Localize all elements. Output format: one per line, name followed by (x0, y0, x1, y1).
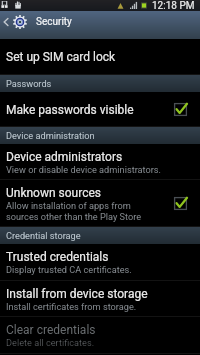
button[interactable]: Navigate up (0, 11, 28, 33)
staticText: Unknown sources (6, 186, 102, 200)
staticText: Clear credentials (6, 323, 96, 337)
button[interactable]: Clear credentials (0, 317, 200, 354)
staticText: Set up SIM card lock (6, 50, 116, 64)
button[interactable]: Device administrators (0, 144, 200, 180)
staticText: Display trusted CA certificates. (6, 264, 132, 275)
staticText: Passwords (6, 78, 52, 89)
staticText: Install certificates from storage. (6, 301, 137, 312)
staticText: Credential storage (6, 230, 81, 241)
staticText: Delete all certificates. (6, 337, 95, 348)
staticText: Security (36, 16, 72, 28)
staticText: Allow installation of apps from (6, 200, 131, 211)
staticText: Install from device storage (6, 287, 148, 301)
button[interactable]: Trusted credentials (0, 244, 200, 281)
staticText: Device administration (6, 130, 95, 141)
staticText: sources other than the Play Store (6, 211, 142, 222)
button[interactable]: Install from device storage (0, 281, 200, 317)
staticText: 12:18 PM (152, 0, 195, 11)
button[interactable]: Make passwords visible (0, 92, 200, 127)
button[interactable]: Set up SIM card lock (0, 39, 200, 75)
staticText: Make passwords visible (6, 103, 134, 117)
staticText: View or disable device administrators. (6, 164, 161, 175)
staticText: Device administrators (6, 150, 123, 164)
staticText: Trusted credentials (6, 250, 109, 264)
button[interactable]: Unknown sources (0, 180, 200, 227)
